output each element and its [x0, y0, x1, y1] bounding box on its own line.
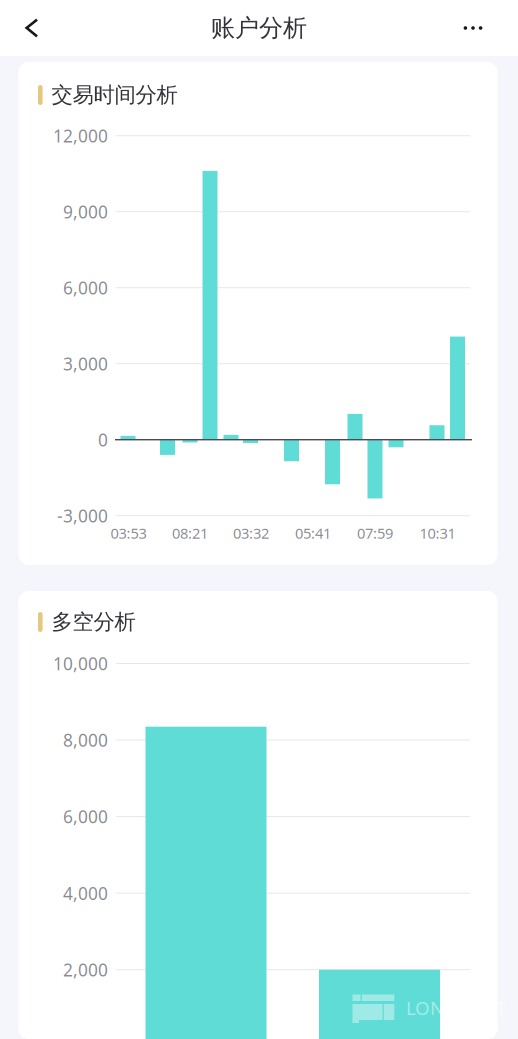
staticText: 0: [98, 428, 108, 451]
staticText: 10:31: [419, 523, 455, 543]
staticText: 4,000: [63, 882, 108, 905]
staticText: 账户分析: [211, 13, 307, 43]
staticText: 08:21: [172, 523, 208, 543]
staticText: 10,000: [53, 652, 108, 675]
staticText: 2,000: [63, 958, 108, 981]
staticText: 03:53: [110, 523, 146, 543]
staticText: 多空分析: [52, 609, 136, 635]
staticText: 3,000: [63, 352, 108, 375]
staticText: -3,000: [57, 504, 108, 527]
staticText: 交易时间分析: [52, 82, 178, 108]
staticText: 8,000: [63, 728, 108, 751]
staticText: 03:32: [233, 523, 269, 543]
staticText: 05:41: [295, 523, 331, 543]
staticText: 12,000: [53, 124, 108, 147]
staticText: 07:59: [357, 523, 393, 543]
staticText: 6,000: [63, 805, 108, 828]
button[interactable]: Back: [8, 0, 56, 56]
staticText: LONGPORT: [406, 995, 506, 1020]
button[interactable]: More options: [449, 0, 497, 56]
staticText: 6,000: [63, 276, 108, 299]
staticText: 9,000: [63, 200, 108, 223]
